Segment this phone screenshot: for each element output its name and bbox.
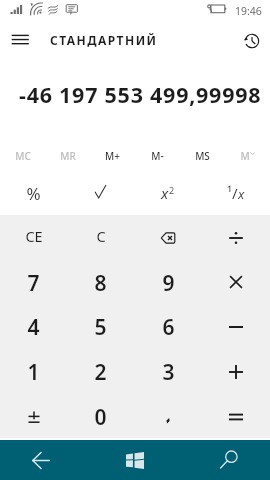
button[interactable]: 4 [0, 303, 67, 348]
button[interactable]: Equals [202, 393, 270, 438]
staticText: MC [15, 149, 31, 163]
staticText: M- [151, 149, 164, 163]
staticText: 1 [27, 358, 40, 387]
button[interactable]: Minus [202, 303, 270, 348]
button[interactable]: x [134, 171, 202, 215]
button[interactable]: Plus minus [0, 393, 67, 438]
staticText: 7 [27, 269, 40, 298]
staticText: x [161, 183, 169, 203]
button[interactable]: 5 [67, 303, 134, 348]
staticText: 4 [27, 313, 40, 342]
staticText: СТАНДАРТНИЙ [50, 32, 158, 48]
staticText: MR [60, 149, 76, 163]
staticText: 8 [94, 269, 107, 298]
staticText: 5 [94, 313, 107, 342]
staticText: 3 [162, 358, 175, 387]
button[interactable]: Plus [202, 348, 270, 393]
staticText: M [240, 149, 250, 163]
staticText: 19:46 [235, 4, 262, 18]
button[interactable]: Start [90, 440, 180, 480]
button[interactable]: Back [0, 440, 90, 480]
staticText: 0 [94, 403, 107, 432]
staticText: 2 [169, 184, 175, 196]
button[interactable]: 9 [134, 259, 202, 303]
button[interactable]: Multiply [202, 259, 270, 303]
staticText: M+ [105, 149, 120, 163]
button[interactable]: CE [0, 215, 67, 259]
button[interactable]: Decimal separator [134, 393, 202, 438]
button[interactable]: 6 [134, 303, 202, 348]
button[interactable]: ¹ [202, 171, 270, 215]
button[interactable]: M- [135, 138, 180, 171]
staticText: C [96, 226, 106, 246]
button[interactable]: C [67, 215, 134, 259]
staticText: % [26, 182, 41, 205]
staticText: x [238, 185, 245, 203]
staticText: / [232, 183, 238, 203]
button[interactable]: Divide [202, 215, 270, 259]
button[interactable]: M+ [90, 138, 135, 171]
button[interactable]: % [0, 171, 67, 215]
button[interactable]: 2 [67, 348, 134, 393]
button[interactable]: 8 [67, 259, 134, 303]
button[interactable]: M [225, 138, 270, 171]
staticText: 6 [162, 313, 175, 342]
staticText: MS [195, 149, 210, 163]
button[interactable]: 0 [67, 393, 134, 438]
button[interactable]: Square root [67, 171, 134, 215]
staticText: CE [25, 226, 43, 246]
button[interactable]: Menu [0, 24, 40, 56]
staticText: ¹ [227, 183, 232, 202]
button[interactable]: 3 [134, 348, 202, 393]
staticText: 2 [94, 358, 107, 387]
button[interactable]: Backspace [134, 215, 202, 259]
staticText: 9 [162, 269, 175, 298]
button[interactable]: Search [180, 440, 270, 480]
button[interactable]: History [234, 24, 270, 56]
button[interactable]: 1 [0, 348, 67, 393]
button[interactable]: 7 [0, 259, 67, 303]
button[interactable]: MC [0, 138, 45, 171]
button[interactable]: MS [180, 138, 225, 171]
button[interactable]: MR [45, 138, 90, 171]
staticText: -46 197 553 499,99998 [19, 80, 262, 109]
